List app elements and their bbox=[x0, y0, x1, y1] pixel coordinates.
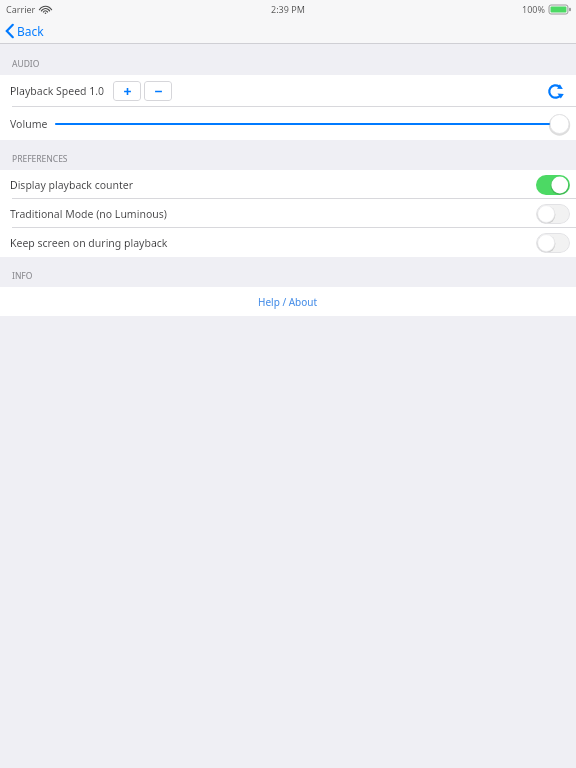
staticText: 2:39 PM bbox=[271, 3, 305, 15]
button[interactable]: Volume slider bbox=[56, 113, 570, 135]
staticText: Playback Speed 1.0 bbox=[10, 84, 105, 98]
staticText: Volume bbox=[10, 117, 48, 131]
button[interactable]: Reset playback speed bbox=[542, 78, 568, 104]
staticText: Carrier bbox=[6, 3, 36, 15]
button[interactable]: Decrease speed bbox=[144, 81, 172, 101]
staticText: 100% bbox=[522, 3, 545, 15]
button[interactable]: Back bbox=[0, 20, 54, 42]
button[interactable]: Off bbox=[536, 233, 570, 253]
staticText: Back bbox=[17, 23, 44, 39]
staticText: INFO bbox=[12, 270, 33, 282]
staticText: Help / About bbox=[258, 295, 318, 309]
button[interactable]: Display playback counter bbox=[0, 170, 576, 199]
staticText: Traditional Mode (no Luminous) bbox=[10, 207, 167, 221]
button[interactable]: Traditional Mode (no Luminous) bbox=[0, 199, 576, 228]
staticText: AUDIO bbox=[12, 58, 40, 70]
button[interactable]: On bbox=[536, 175, 570, 195]
button[interactable]: Help / About bbox=[0, 287, 576, 316]
staticText: Display playback counter bbox=[10, 178, 134, 192]
staticText: Keep screen on during playback bbox=[10, 236, 168, 250]
button[interactable]: Off bbox=[536, 204, 570, 224]
button[interactable]: Keep screen on during playback bbox=[0, 228, 576, 257]
button[interactable]: Increase speed bbox=[113, 81, 141, 101]
staticText: PREFERENCES bbox=[12, 153, 68, 165]
